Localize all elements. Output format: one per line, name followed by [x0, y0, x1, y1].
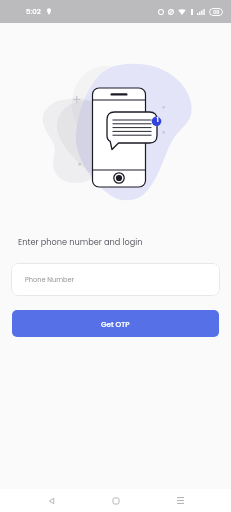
- staticText: Get OTP: [101, 319, 130, 329]
- staticText: 1: [155, 116, 160, 124]
- button[interactable]: Phone Number: [11, 263, 220, 296]
- staticText: Enter phone number and login: [18, 236, 143, 247]
- staticText: 98: [213, 9, 220, 16]
- button[interactable]: Get OTP: [12, 310, 219, 337]
- button[interactable]: Home: [102, 489, 130, 512]
- staticText: Phone Number: [25, 275, 74, 284]
- button[interactable]: Back: [37, 489, 65, 512]
- button[interactable]: Recent apps: [166, 489, 194, 512]
- staticText: 5:02: [26, 7, 41, 17]
